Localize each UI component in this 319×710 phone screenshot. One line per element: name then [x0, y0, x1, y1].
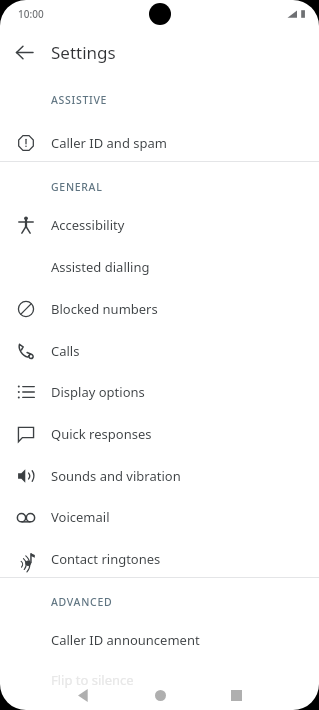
button[interactable]: Home: [145, 680, 175, 710]
staticText: Contact ringtones: [51, 550, 161, 568]
staticText: Sounds and vibration: [51, 467, 181, 485]
button[interactable]: Calls: [0, 334, 319, 368]
button[interactable]: Recent apps: [221, 680, 251, 710]
staticText: Calls: [51, 342, 80, 360]
staticText: Settings: [51, 41, 116, 64]
button[interactable]: Contact ringtones: [0, 542, 319, 576]
button[interactable]: Caller ID announcement: [0, 623, 319, 657]
staticText: Caller ID announcement: [51, 631, 200, 649]
staticText: Quick responses: [51, 425, 152, 443]
staticText: Assisted dialling: [51, 258, 150, 276]
button[interactable]: Display options: [0, 375, 319, 409]
staticText: Caller ID and spam: [51, 134, 167, 152]
button[interactable]: Voicemail: [0, 500, 319, 534]
button[interactable]: Flip to silence: [0, 665, 319, 695]
staticText: GENERAL: [51, 180, 103, 194]
button[interactable]: Blocked numbers: [0, 292, 319, 326]
button[interactable]: Accessibility: [0, 208, 319, 242]
staticText: 10:00: [18, 7, 44, 21]
button[interactable]: Sounds and vibration: [0, 459, 319, 493]
staticText: Voicemail: [51, 508, 110, 526]
staticText: Display options: [51, 383, 145, 401]
button[interactable]: Assisted dialling: [0, 250, 319, 284]
staticText: Accessibility: [51, 216, 125, 234]
button[interactable]: Back: [0, 28, 48, 76]
staticText: Flip to silence: [51, 671, 134, 689]
staticText: ADVANCED: [51, 595, 113, 609]
staticText: Blocked numbers: [51, 300, 158, 318]
staticText: ASSISTIVE: [51, 93, 108, 107]
button[interactable]: Back: [68, 680, 98, 710]
button[interactable]: Caller ID and spam: [0, 126, 319, 160]
button[interactable]: Quick responses: [0, 417, 319, 451]
